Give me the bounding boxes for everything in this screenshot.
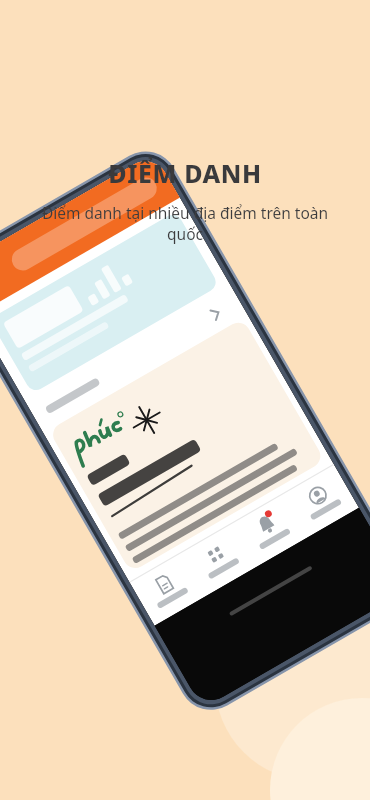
button[interactable]: Điểm danh onboarding page [0,0,370,800]
staticText: ĐIỂM DANH [108,156,262,190]
staticText: Điểm danh tại nhiều địa điểm trên toàn q… [40,202,330,245]
